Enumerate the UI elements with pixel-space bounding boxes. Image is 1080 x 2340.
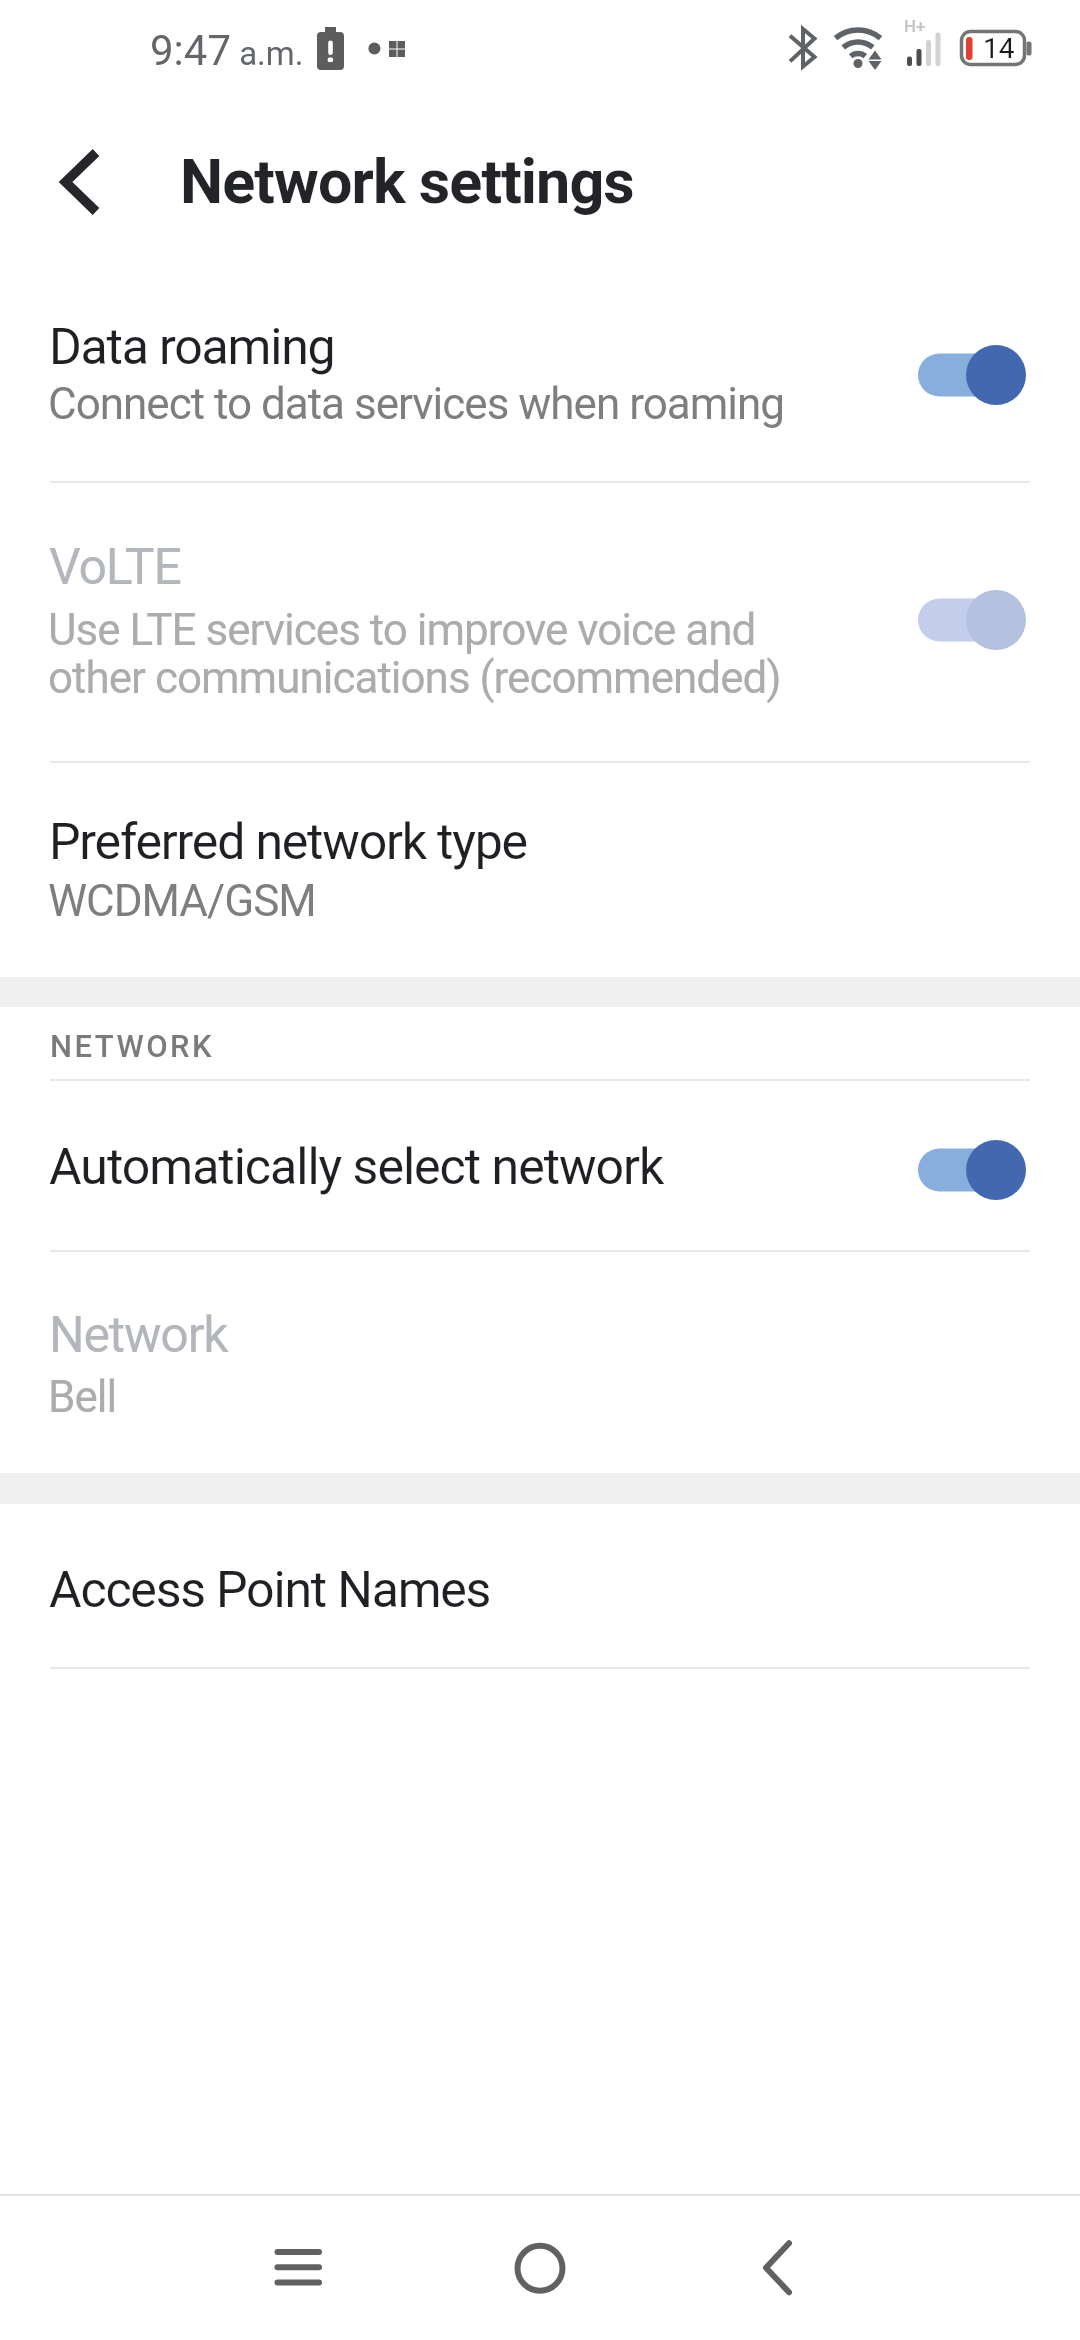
button[interactable] — [740, 2228, 820, 2308]
button[interactable] — [258, 2228, 338, 2308]
staticText: Bell — [48, 1371, 117, 1423]
staticText: Access Point Names — [49, 1561, 491, 1620]
staticText: 9:47 a.m. — [150, 26, 304, 75]
button[interactable] — [0, 1510, 1080, 1668]
button[interactable] — [910, 585, 1030, 655]
button[interactable] — [40, 140, 130, 230]
staticText: 14 — [983, 32, 1015, 65]
button[interactable] — [500, 2228, 580, 2308]
staticText: Use LTE services to improve voice and — [48, 604, 756, 656]
staticText: Data roaming — [49, 318, 335, 377]
staticText: VoLTE — [49, 538, 181, 597]
button[interactable] — [0, 300, 1080, 480]
button[interactable] — [0, 780, 1080, 960]
button[interactable] — [0, 1090, 1080, 1250]
staticText: Connect to data services when roaming — [48, 378, 784, 430]
staticText: WCDMA/GSM — [48, 875, 316, 927]
button[interactable] — [910, 1135, 1030, 1205]
staticText: H+ — [904, 16, 926, 36]
staticText: Network — [49, 1306, 228, 1365]
button[interactable] — [910, 340, 1030, 410]
staticText: other communications (recommended) — [48, 652, 781, 704]
staticText: Network settings — [180, 146, 634, 217]
staticText: Automatically select network — [49, 1138, 664, 1197]
staticText: NETWORK — [50, 1028, 215, 1064]
button[interactable] — [0, 500, 1080, 740]
staticText: Preferred network type — [49, 813, 527, 872]
